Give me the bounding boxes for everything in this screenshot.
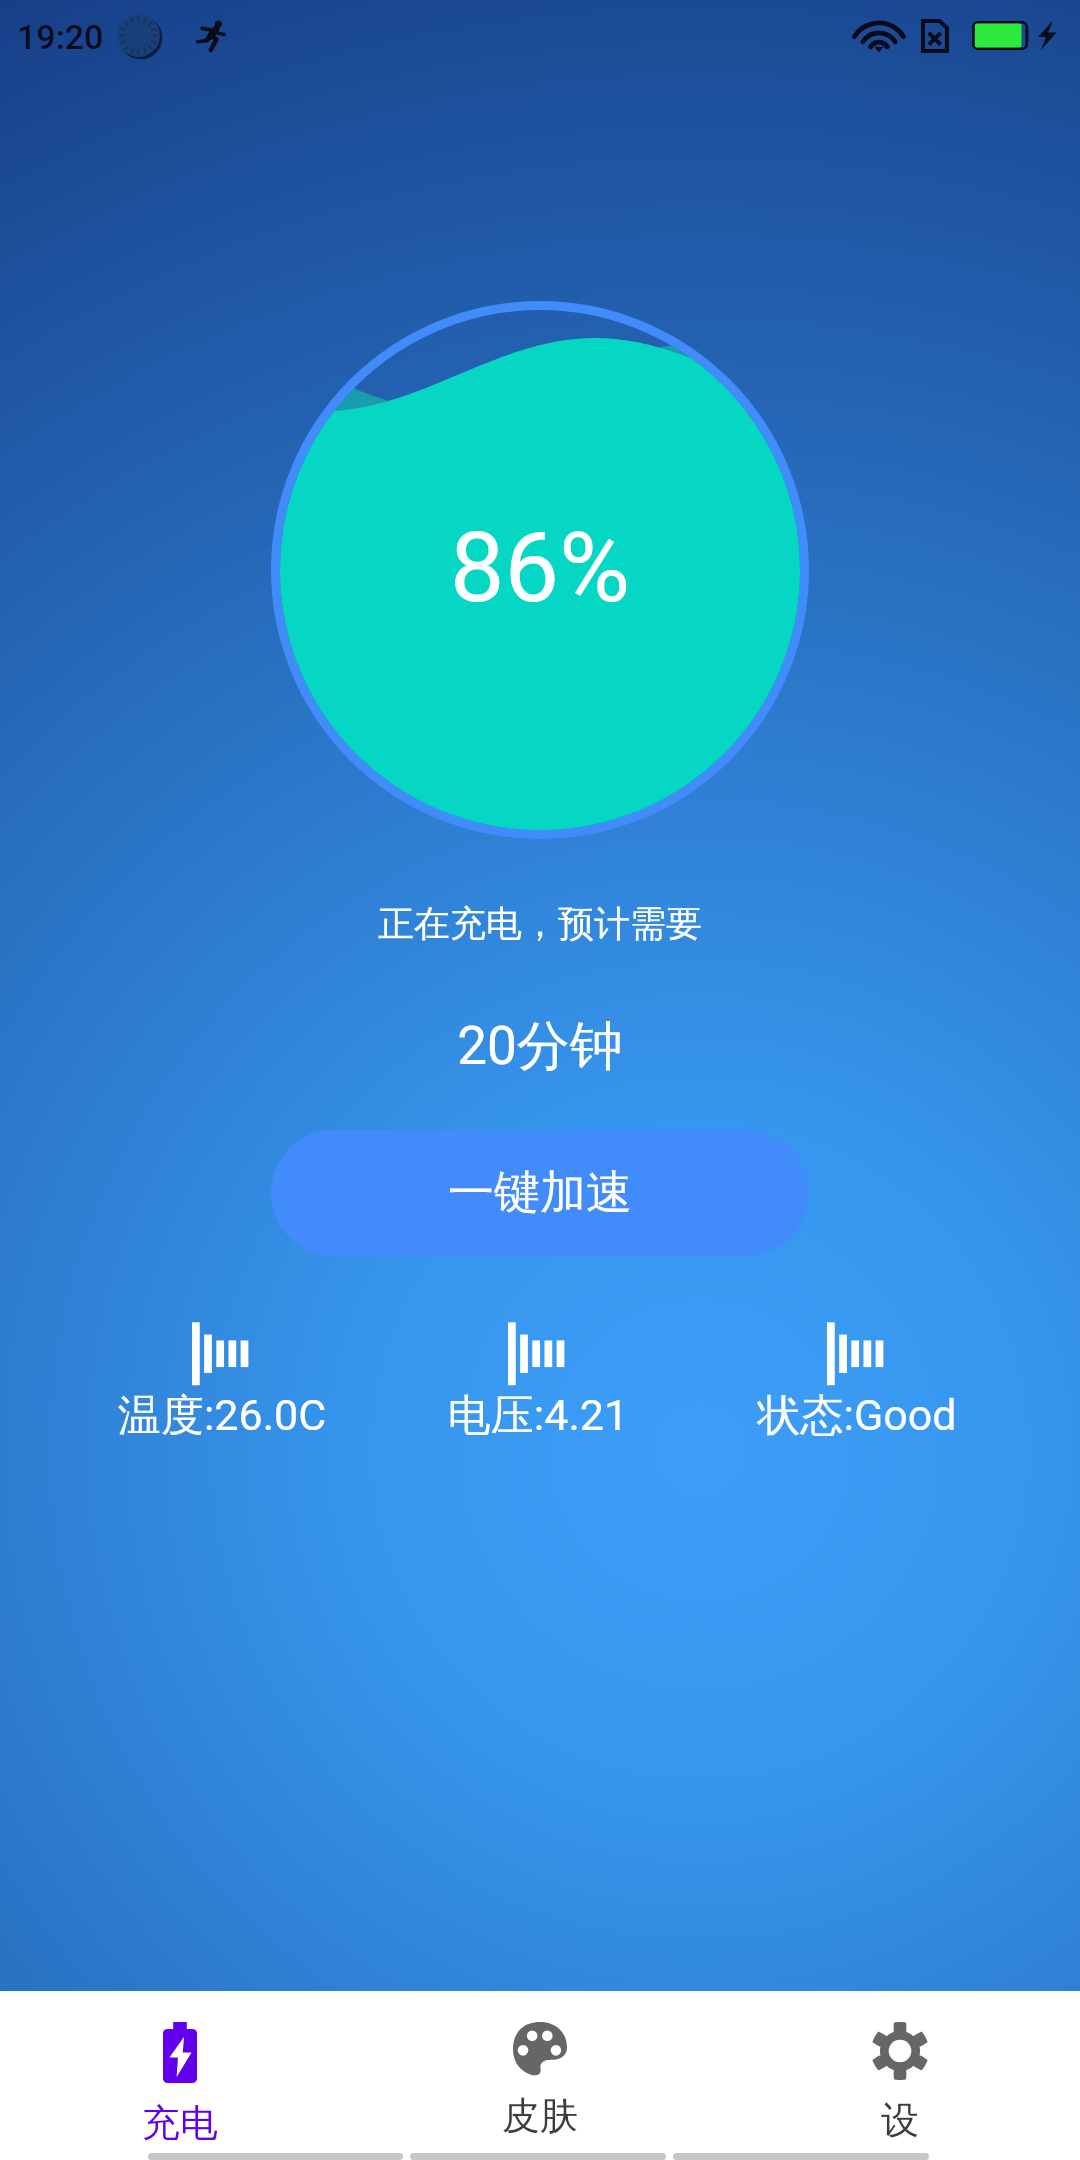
staticText: 20分钟 [0, 1013, 1080, 1080]
staticText: 电压:4.21 [338, 1389, 738, 1443]
button[interactable]: 一键加速 [271, 1130, 809, 1256]
staticText: 86% [450, 511, 631, 625]
staticText: 状态:Good [657, 1389, 1057, 1443]
staticText: 充电 [142, 2099, 218, 2147]
staticText: 温度:26.0C [22, 1389, 422, 1443]
staticText: 正在充电，预计需要 [0, 901, 1080, 946]
button[interactable]: Settings [720, 1991, 1080, 2148]
button[interactable]: Charging [0, 1991, 360, 2148]
button[interactable]: Skin [360, 1991, 720, 2148]
staticText: 19:20 [17, 17, 104, 57]
staticText: 皮肤 [502, 2092, 578, 2140]
staticText: 一键加速 [448, 1164, 632, 1222]
staticText: 设 [881, 2096, 919, 2144]
